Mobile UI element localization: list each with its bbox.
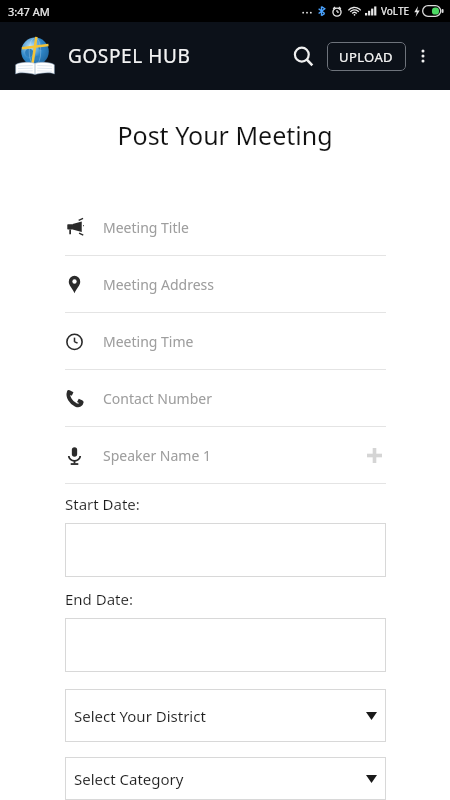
button[interactable]: Contact Number — [0, 370, 450, 426]
button[interactable]: UPLOAD — [327, 42, 406, 71]
button[interactable]: Search — [283, 36, 323, 76]
button[interactable]: Select Category — [65, 757, 386, 800]
button[interactable]: Start Date: — [65, 523, 386, 577]
button[interactable]: Gospel Hub logo — [12, 33, 58, 79]
button[interactable]: Meeting Time — [0, 313, 450, 369]
button[interactable]: More options — [406, 39, 440, 73]
staticText: Speaker Name 1 — [103, 446, 362, 465]
staticText: UPLOAD — [339, 48, 394, 66]
button[interactable]: Meeting Address — [0, 256, 450, 312]
button[interactable]: Speaker Name 1 — [0, 427, 450, 483]
staticText: Post Your Meeting — [0, 118, 450, 152]
staticText: Meeting Address — [103, 275, 386, 294]
button[interactable]: Meeting Title — [0, 199, 450, 255]
staticText: GOSPEL HUB — [68, 43, 283, 69]
staticText: Meeting Time — [103, 332, 386, 351]
button[interactable]: Add speaker — [362, 443, 386, 467]
staticText: Select Your District — [74, 706, 366, 726]
staticText: Meeting Title — [103, 218, 386, 237]
staticText: End Date: — [65, 589, 133, 609]
button[interactable]: Select Your District — [65, 689, 386, 742]
staticText: Contact Number — [103, 389, 386, 408]
staticText: Select Category — [74, 769, 366, 789]
staticText: 3:47 AM — [8, 4, 50, 19]
staticText: VoLTE — [381, 4, 410, 18]
button[interactable]: End Date: — [65, 618, 386, 672]
staticText: Start Date: — [65, 494, 140, 514]
